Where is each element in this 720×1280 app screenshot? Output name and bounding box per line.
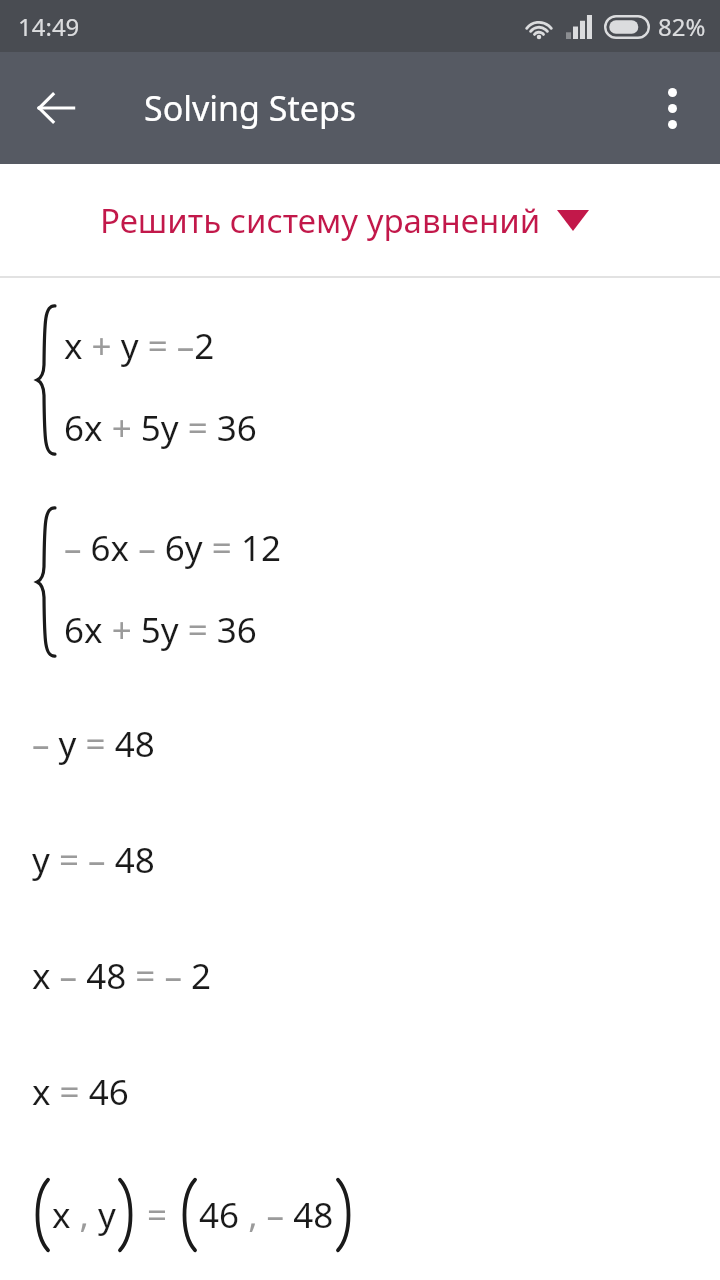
staticText: – 6x – 6y = 12 bbox=[64, 524, 281, 572]
staticText: Solving Steps bbox=[144, 85, 357, 131]
staticText: = bbox=[138, 1191, 177, 1239]
button[interactable]: More options bbox=[636, 72, 708, 144]
staticText: x , y bbox=[52, 1191, 116, 1239]
staticText: x + y = –2 bbox=[64, 322, 215, 370]
button[interactable]: Back bbox=[20, 72, 92, 144]
staticText: 14:49 bbox=[18, 10, 80, 43]
staticText: x – 48 = – 2 bbox=[32, 952, 212, 1000]
staticText: 46 , – 48 bbox=[199, 1191, 334, 1239]
staticText: x = 46 bbox=[32, 1068, 129, 1116]
staticText: 6x + 5y = 36 bbox=[64, 404, 257, 452]
button[interactable]: Решить систему уравнений bbox=[0, 164, 720, 276]
staticText: Решить систему уравнений bbox=[100, 198, 541, 243]
staticText: 82% bbox=[658, 10, 706, 43]
staticText: 6x + 5y = 36 bbox=[64, 606, 257, 654]
staticText: – y = 48 bbox=[32, 720, 155, 768]
staticText: y = – 48 bbox=[32, 836, 155, 884]
